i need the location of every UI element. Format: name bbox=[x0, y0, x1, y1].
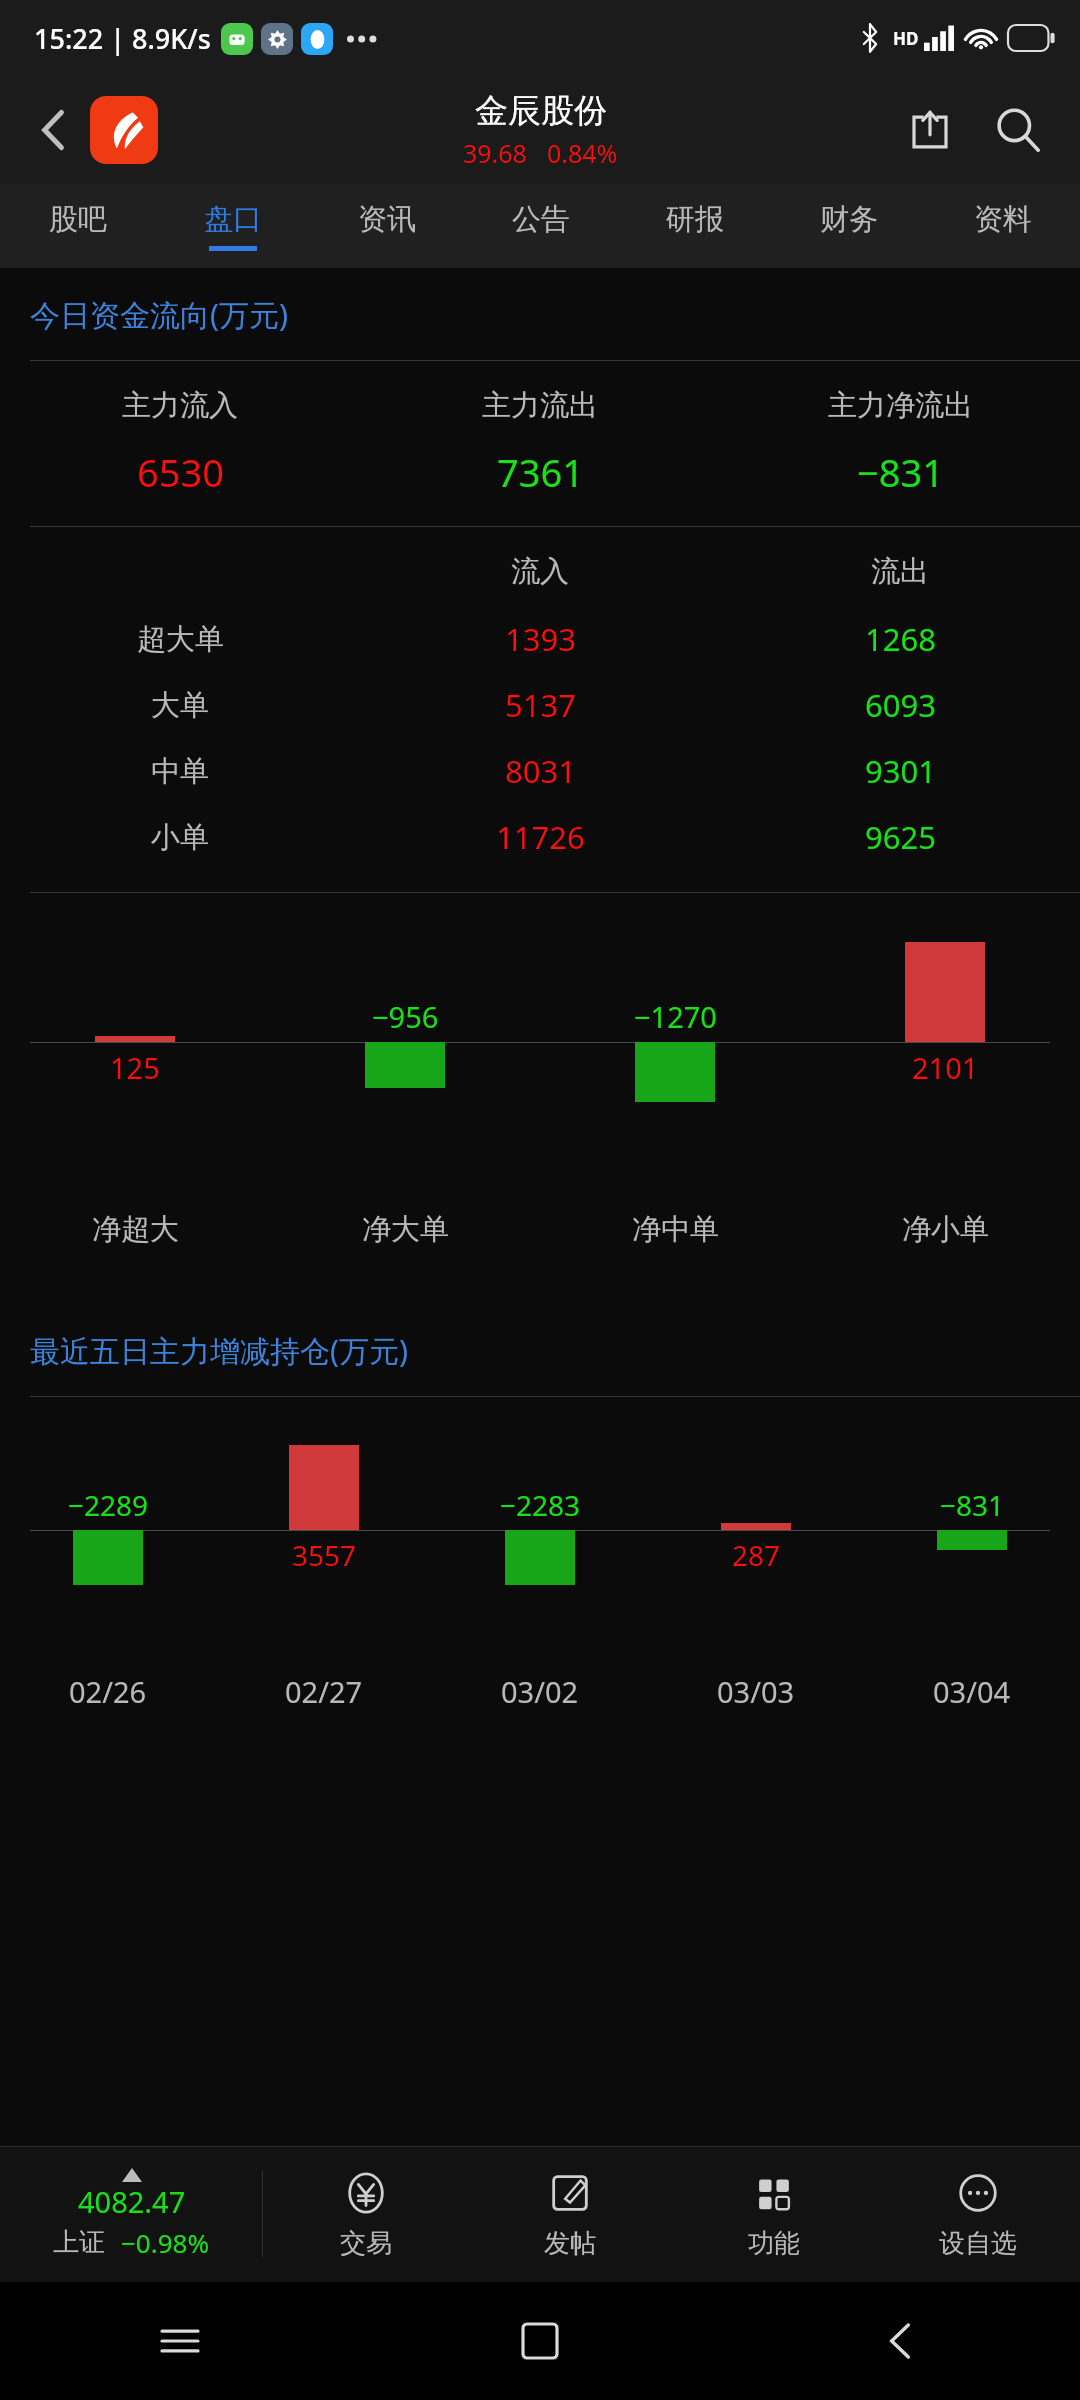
staticText: 超大单 bbox=[137, 621, 224, 658]
button[interactable]: 发帖 bbox=[468, 2146, 672, 2282]
staticText: 125 bbox=[110, 1048, 160, 1087]
staticText: −831 bbox=[940, 1486, 1005, 1524]
staticText: 8031 bbox=[505, 750, 576, 792]
staticText: −2283 bbox=[500, 1486, 581, 1524]
button[interactable]: Back bbox=[22, 99, 84, 161]
button[interactable]: 公告 bbox=[464, 184, 618, 268]
staticText: 主力流入 bbox=[122, 387, 238, 424]
staticText: 39.68 bbox=[463, 136, 527, 170]
staticText: 发帖 bbox=[544, 2227, 596, 2260]
staticText: 净超大 bbox=[92, 1211, 179, 1248]
staticText: 6530 bbox=[137, 446, 224, 498]
staticText: 流入 bbox=[511, 553, 569, 590]
button[interactable]: 资讯 bbox=[310, 184, 464, 268]
staticText: −1270 bbox=[634, 997, 717, 1036]
staticText: 6093 bbox=[865, 684, 936, 726]
staticText: 主力流出 bbox=[482, 387, 598, 424]
staticText: 7361 bbox=[497, 446, 584, 498]
staticText: 财务 bbox=[820, 201, 878, 238]
staticText: 03/02 bbox=[501, 1672, 579, 1711]
staticText: 287 bbox=[732, 1536, 781, 1574]
staticText: −0.98% bbox=[121, 2225, 210, 2260]
staticText: 设自选 bbox=[939, 2227, 1017, 2260]
button[interactable]: 交易 bbox=[263, 2146, 468, 2282]
staticText: 02/27 bbox=[285, 1672, 363, 1711]
button[interactable]: 4082.47 bbox=[0, 2146, 262, 2282]
staticText: −831 bbox=[857, 446, 944, 498]
staticText: 流出 bbox=[871, 553, 929, 590]
staticText: 小单 bbox=[151, 819, 209, 856]
staticText: 9301 bbox=[865, 750, 936, 792]
staticText: 2101 bbox=[912, 1048, 979, 1087]
staticText: 今日资金流向(万元) bbox=[30, 294, 288, 335]
staticText: 03/04 bbox=[933, 1672, 1011, 1711]
staticText: 03/03 bbox=[717, 1672, 795, 1711]
staticText: 3557 bbox=[292, 1536, 357, 1574]
staticText: 净小单 bbox=[902, 1211, 989, 1248]
button[interactable]: 功能 bbox=[672, 2146, 876, 2282]
staticText: 股吧 bbox=[49, 201, 107, 238]
staticText: 研报 bbox=[666, 201, 724, 238]
staticText: 功能 bbox=[748, 2227, 800, 2260]
button[interactable]: App logo bbox=[90, 96, 158, 164]
staticText: −2289 bbox=[68, 1486, 149, 1524]
staticText: 1268 bbox=[865, 618, 936, 660]
staticText: 9625 bbox=[865, 816, 936, 858]
staticText: 主力净流出 bbox=[828, 387, 973, 424]
button[interactable]: Back bbox=[852, 2293, 948, 2389]
button[interactable]: Home bbox=[492, 2293, 588, 2389]
staticText: HD bbox=[893, 27, 919, 50]
staticText: 1393 bbox=[505, 618, 576, 660]
button[interactable]: 设自选 bbox=[876, 2146, 1080, 2282]
staticText: 4082.47 bbox=[78, 2182, 186, 2221]
staticText: 11726 bbox=[496, 816, 585, 858]
staticText: 资料 bbox=[974, 201, 1032, 238]
staticText: 上证 bbox=[53, 2226, 105, 2259]
staticText: 5137 bbox=[505, 684, 576, 726]
button[interactable]: 盘口 bbox=[155, 184, 310, 268]
staticText: −956 bbox=[372, 997, 439, 1036]
staticText: 中单 bbox=[151, 753, 209, 790]
button[interactable]: 研报 bbox=[618, 184, 772, 268]
staticText: 0.84% bbox=[547, 136, 618, 170]
staticText: 15:22 | 8.9K/s bbox=[34, 20, 211, 57]
staticText: 资讯 bbox=[358, 201, 416, 238]
button[interactable]: 财务 bbox=[772, 184, 926, 268]
button[interactable]: 股吧 bbox=[0, 184, 155, 268]
staticText: 大单 bbox=[151, 687, 209, 724]
staticText: 金辰股份 bbox=[475, 90, 607, 132]
staticText: 02/26 bbox=[69, 1672, 147, 1711]
button[interactable]: Search bbox=[980, 92, 1056, 168]
staticText: 交易 bbox=[340, 2227, 392, 2260]
staticText: 净中单 bbox=[632, 1211, 719, 1248]
button[interactable]: 资料 bbox=[926, 184, 1080, 268]
staticText: 最近五日主力增减持仓(万元) bbox=[30, 1330, 408, 1371]
button[interactable]: Share bbox=[894, 94, 966, 166]
staticText: 净大单 bbox=[362, 1211, 449, 1248]
staticText: 公告 bbox=[512, 201, 570, 238]
staticText: 盘口 bbox=[204, 201, 262, 238]
button[interactable]: Recents bbox=[132, 2293, 228, 2389]
